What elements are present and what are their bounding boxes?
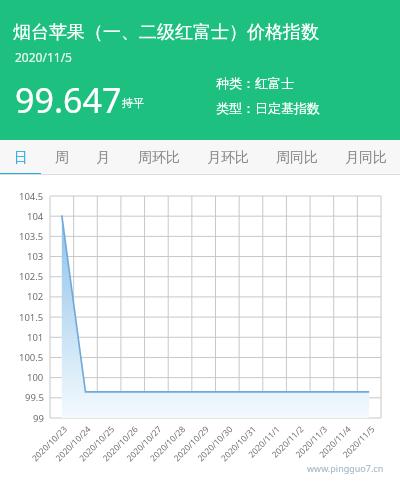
staticText: 99.647 [15, 77, 122, 123]
button[interactable]: 周环比 [124, 140, 193, 175]
staticText: 持平 [122, 96, 144, 110]
staticText: 种类：红富士 [216, 75, 294, 91]
button[interactable]: 月环比 [193, 140, 262, 175]
staticText: 月 [96, 149, 110, 167]
button[interactable]: 日 [0, 140, 41, 175]
staticText: 月环比 [207, 149, 249, 167]
staticText: www.pingguo7.cn [307, 462, 384, 474]
staticText: 周同比 [276, 149, 318, 167]
button[interactable]: 周 [41, 140, 82, 175]
button[interactable]: 周同比 [262, 140, 331, 175]
staticText: 2020/11/5 [15, 49, 72, 65]
staticText: 类型：日定基指数 [216, 100, 320, 116]
staticText: 周 [55, 149, 69, 167]
button[interactable]: 月同比 [331, 140, 400, 175]
staticText: 周环比 [138, 149, 180, 167]
staticText: 月同比 [345, 149, 387, 167]
staticText: 日 [14, 149, 28, 167]
button[interactable]: 月 [82, 140, 124, 175]
staticText: 烟台苹果（一、二级红富士）价格指数 [13, 21, 319, 44]
